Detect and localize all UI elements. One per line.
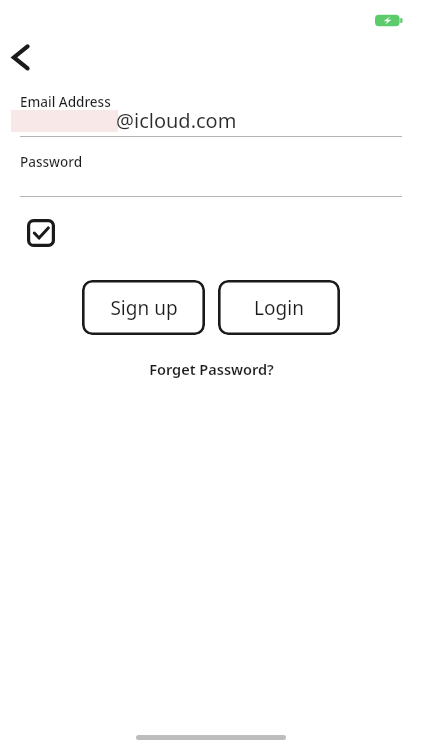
staticText: Sign up [110,295,178,321]
button[interactable]: Remember me checkbox, checked [27,219,55,247]
staticText: Login [254,295,304,321]
button[interactable]: Back [4,38,42,76]
other: Battery charging [375,13,403,28]
button[interactable]: Sign up [82,280,205,335]
button[interactable]: Login [218,280,340,335]
staticText: Password [20,153,83,171]
staticText: Email Address [20,93,111,111]
button[interactable]: Forget Password? [141,356,282,382]
staticText: Forget Password? [149,359,274,379]
staticText: @icloud.com [116,107,237,134]
